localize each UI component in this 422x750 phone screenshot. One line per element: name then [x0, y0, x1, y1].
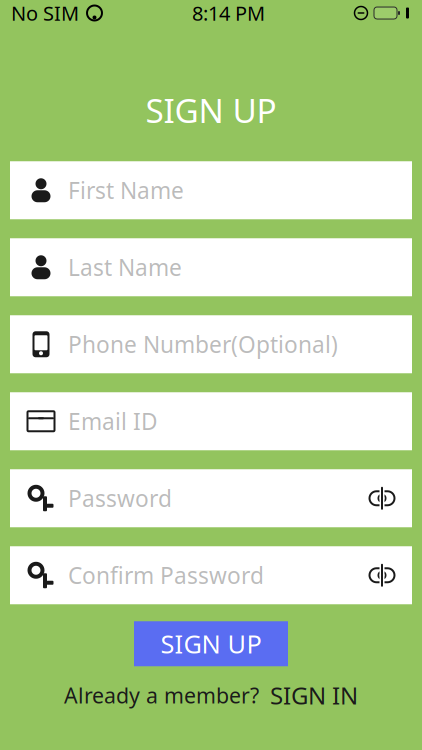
staticText: Email ID: [68, 406, 158, 436]
button[interactable]: Last Name: [10, 238, 412, 296]
button[interactable]: SIGN IN: [270, 679, 358, 711]
staticText: Already a member?: [64, 681, 259, 709]
button[interactable]: First Name: [10, 161, 412, 219]
staticText: 8:14 PM: [192, 0, 265, 26]
staticText: Password: [68, 483, 172, 513]
button[interactable]: Confirm Password: [10, 546, 412, 604]
staticText: SIGN UP: [160, 627, 261, 660]
staticText: SIGN UP: [145, 88, 276, 132]
staticText: No SIM: [11, 0, 79, 26]
staticText: Phone Number(Optional): [68, 329, 338, 359]
button[interactable]: Email ID: [10, 392, 412, 450]
staticText: Last Name: [68, 252, 182, 282]
staticText: First Name: [68, 175, 184, 205]
staticText: SIGN IN: [270, 679, 358, 711]
button[interactable]: SIGN UP: [134, 621, 288, 666]
button[interactable]: Phone Number(Optional): [10, 315, 412, 373]
button[interactable]: Password: [10, 469, 412, 527]
staticText: Confirm Password: [68, 560, 264, 590]
